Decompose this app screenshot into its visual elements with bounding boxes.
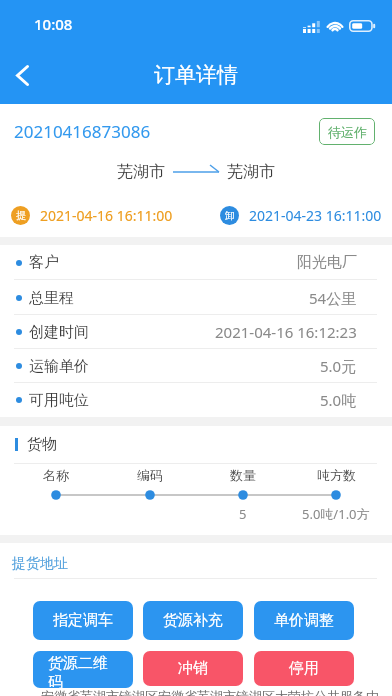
staticText: 名称 [43,467,69,483]
staticText: 待运作 [328,124,367,140]
staticText: 20210416873086 [14,120,151,143]
staticText: 5 [239,505,247,523]
button[interactable]: 待运作 [319,118,375,145]
button[interactable]: 指定调车 [33,601,133,640]
button[interactable]: 总里程 [0,280,392,315]
staticText: 可用吨位 [29,391,89,410]
button[interactable]: 单价调整 [254,601,354,640]
staticText: 货源二维码 [48,654,108,691]
button[interactable]: Back [0,51,46,99]
button[interactable]: 停用 [254,651,354,686]
button[interactable]: 运输单价 [0,349,392,383]
staticText: 10:08 [34,14,73,34]
button[interactable]: 冲销 [143,651,243,686]
staticText: 2021-04-23 16:11:00 [249,206,382,225]
staticText: 5.0吨 [320,390,357,410]
staticText: 芜湖市 [227,162,275,182]
staticText: 5.0元 [320,356,357,376]
button[interactable]: 货源二维码 [33,651,133,688]
staticText: 编码 [137,467,163,483]
staticText: 卸 [225,209,235,222]
staticText: 54公里 [309,288,357,308]
staticText: 停用 [289,659,319,678]
staticText: 数量 [230,467,256,483]
staticText: 单价调整 [274,611,334,630]
button[interactable]: 货源补充 [143,601,243,640]
button[interactable]: 客户 [0,245,392,280]
staticText: 订单详情 [154,62,238,88]
staticText: 芜湖市 [117,162,165,182]
staticText: 提 [16,209,26,222]
staticText: 5.0吨/1.0方 [302,505,370,523]
staticText: 吨方数 [317,467,356,483]
staticText: 货源补充 [163,611,223,630]
staticText: 安徽省芜湖市镜湖区安徽省芜湖市镜湖区大荣坊公共服务中 [41,688,379,696]
staticText: 指定调车 [53,611,113,630]
staticText: 创建时间 [29,323,89,342]
staticText: 客户 [29,253,59,272]
staticText: 总里程 [29,289,74,308]
staticText: 提货地址 [12,555,68,573]
staticText: 2021-04-16 16:12:23 [215,322,357,342]
staticText: 阳光电厂 [297,253,357,272]
staticText: 运输单价 [29,357,89,376]
button[interactable]: 可用吨位 [0,383,392,417]
staticText: 冲销 [178,659,208,678]
button[interactable]: 创建时间 [0,315,392,349]
staticText: 2021-04-16 16:11:00 [40,206,173,225]
staticText: 货物 [27,435,57,454]
